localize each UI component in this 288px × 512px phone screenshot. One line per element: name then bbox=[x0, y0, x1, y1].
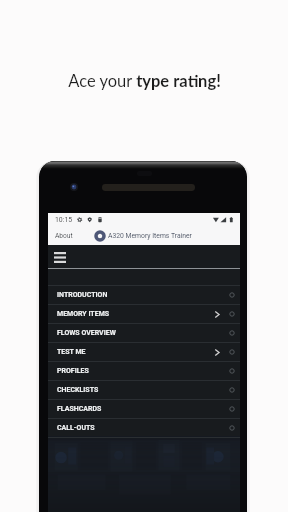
staticText: CALL-OUTS bbox=[57, 424, 95, 432]
staticText: CHECKLISTS bbox=[57, 386, 99, 394]
staticText: 10:15 bbox=[55, 216, 73, 224]
staticText: PROFILES bbox=[57, 367, 89, 375]
staticText: FLASHCARDS bbox=[57, 405, 102, 413]
button[interactable]: A320 Memory Items Trainer bbox=[94, 230, 190, 242]
button[interactable]: MEMORY ITEMS bbox=[48, 305, 240, 324]
button[interactable]: FLASHCARDS bbox=[48, 400, 240, 419]
button[interactable]: PROFILES bbox=[48, 362, 240, 381]
button[interactable]: Open navigation menu bbox=[48, 245, 72, 269]
staticText: About bbox=[55, 232, 73, 240]
button[interactable]: TEST ME bbox=[48, 343, 240, 362]
staticText: INTRODUCTION bbox=[57, 291, 108, 299]
staticText: FLOWS OVERVIEW bbox=[57, 329, 116, 337]
staticText: MEMORY ITEMS bbox=[57, 310, 110, 318]
button[interactable]: INTRODUCTION bbox=[48, 286, 240, 305]
button[interactable]: CHECKLISTS bbox=[48, 381, 240, 400]
button[interactable]: CALL-OUTS bbox=[48, 419, 240, 438]
staticText: TEST ME bbox=[57, 348, 86, 356]
button[interactable]: About bbox=[48, 227, 80, 245]
staticText: Ace your type rating! bbox=[68, 71, 221, 91]
button[interactable]: FLOWS OVERVIEW bbox=[48, 324, 240, 343]
staticText: A320 Memory Items Trainer bbox=[108, 232, 192, 240]
